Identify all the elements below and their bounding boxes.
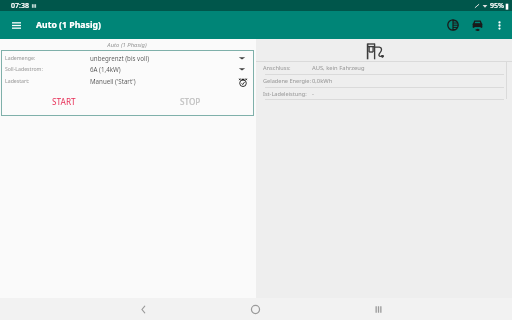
staticText: STOP bbox=[180, 96, 201, 107]
button[interactable]: Vehicle bbox=[465, 12, 489, 38]
staticText: 07:38 bbox=[11, 1, 29, 11]
button[interactable]: STOP bbox=[127, 92, 254, 111]
staticText: 6A (1,4kW) bbox=[90, 65, 238, 73]
staticText: - bbox=[312, 90, 314, 98]
button[interactable]: Display contrast bbox=[441, 12, 464, 38]
staticText: Manuell ('Start') bbox=[90, 77, 236, 85]
button[interactable]: Ladestart: bbox=[5, 75, 246, 86]
button[interactable]: Ist-Ladeleistung: bbox=[263, 87, 504, 100]
staticText: Ist-Ladeleistung: bbox=[263, 90, 312, 98]
staticText: AUS, kein Fahrzeug bbox=[312, 64, 365, 72]
button[interactable]: Open navigation menu bbox=[0, 11, 32, 39]
button[interactable]: Soll-Ladestrom: bbox=[5, 63, 246, 74]
staticText: Lademenge: bbox=[5, 54, 90, 61]
button[interactable]: Anschluss: bbox=[263, 61, 504, 74]
staticText: Anschluss: bbox=[263, 64, 312, 72]
staticText: Ladestart: bbox=[5, 77, 90, 84]
staticText: Geladene Energie: bbox=[263, 77, 312, 85]
staticText: 0,0kWh bbox=[312, 77, 333, 85]
button[interactable]: Home bbox=[237, 298, 273, 320]
staticText: unbegrenzt (bis voll) bbox=[90, 54, 238, 62]
staticText: START bbox=[52, 96, 76, 107]
button[interactable]: Set charge start time bbox=[238, 77, 248, 87]
button[interactable]: START bbox=[1, 92, 127, 111]
staticText: Soll-Ladestrom: bbox=[5, 65, 90, 72]
staticText: Auto (1 Phasig) bbox=[36, 19, 101, 31]
button[interactable]: More options bbox=[489, 12, 509, 38]
button[interactable]: Geladene Energie: bbox=[263, 74, 504, 87]
button[interactable]: Recent apps bbox=[360, 298, 396, 320]
button[interactable]: Back bbox=[125, 298, 161, 320]
button[interactable]: Lademenge: bbox=[5, 52, 246, 63]
staticText: 95% bbox=[490, 1, 504, 11]
staticText: Auto (1 Phasig) bbox=[107, 41, 147, 49]
